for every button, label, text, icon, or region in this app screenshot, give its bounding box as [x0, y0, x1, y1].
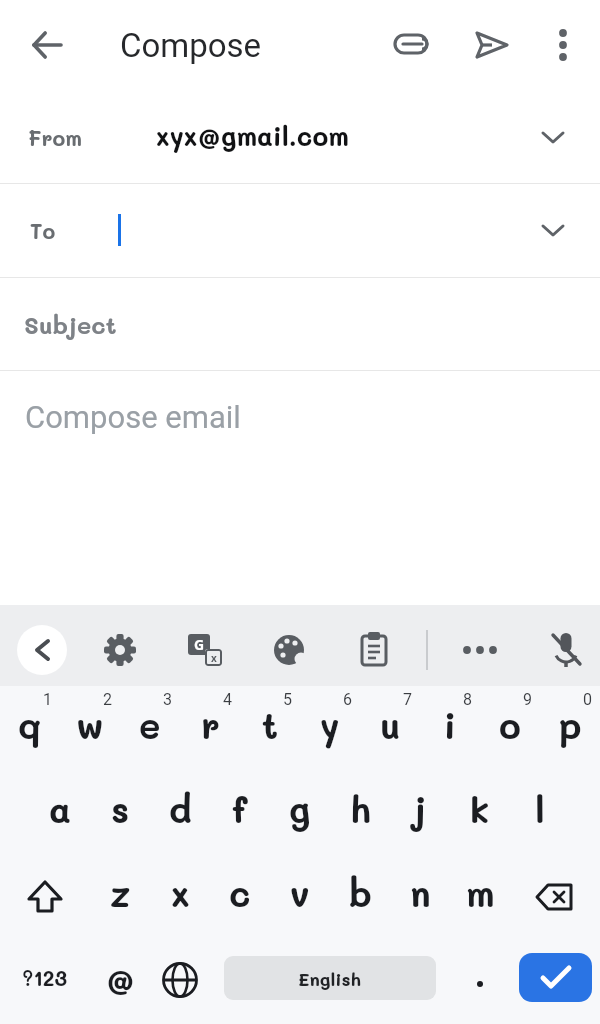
button[interactable]: y [300, 686, 360, 770]
button[interactable] [150, 939, 210, 1024]
button[interactable]: g [270, 770, 330, 854]
button[interactable]: Subject [0, 278, 600, 370]
button[interactable]: G [188, 634, 222, 666]
staticText: 9 [523, 690, 532, 709]
button[interactable]: t [240, 686, 300, 770]
staticText: b [349, 869, 372, 916]
button[interactable] [393, 28, 433, 60]
staticText: l [535, 785, 545, 832]
staticText: r [201, 701, 220, 748]
button[interactable] [548, 27, 578, 63]
staticText: x [211, 651, 217, 665]
button[interactable]: m [450, 854, 510, 939]
staticText: From [28, 124, 82, 151]
button[interactable] [549, 631, 583, 669]
staticText: 4 [223, 690, 232, 709]
staticText: v [290, 869, 310, 916]
button[interactable]: @ [90, 939, 150, 1024]
button[interactable]: r [180, 686, 240, 770]
staticText: q [18, 701, 42, 748]
staticText: n [410, 869, 431, 916]
staticText: Compose email [25, 399, 241, 435]
button[interactable]: Compose email [0, 371, 600, 605]
staticText: Subject [24, 309, 117, 340]
button[interactable]: i [420, 686, 480, 770]
staticText: t [262, 701, 278, 748]
staticText: y [320, 701, 340, 748]
staticText: j [413, 785, 427, 832]
staticText: s [111, 785, 130, 832]
staticText: u [380, 701, 401, 748]
staticText: To [30, 217, 56, 244]
staticText: ?123 [22, 964, 68, 991]
staticText: 1 [43, 690, 52, 709]
button[interactable]: j [390, 770, 450, 854]
staticText: x [171, 869, 190, 916]
button[interactable]: d [150, 770, 210, 854]
staticText: d [169, 785, 192, 832]
button[interactable] [359, 632, 389, 668]
staticText: 0 [583, 690, 592, 709]
staticText: English [298, 967, 362, 990]
staticText: xyx@gmail.com [156, 119, 349, 153]
button[interactable]: c [210, 854, 270, 939]
staticText: 6 [343, 690, 352, 709]
button[interactable]: p [540, 686, 600, 770]
button[interactable] [472, 25, 512, 65]
staticText: p [559, 701, 582, 748]
staticText: Compose [120, 26, 262, 65]
button[interactable] [17, 625, 67, 675]
button[interactable] [450, 939, 510, 1024]
staticText: 3 [163, 690, 172, 709]
button[interactable]: From [0, 90, 600, 183]
button[interactable] [460, 638, 500, 662]
staticText: k [470, 785, 490, 832]
button[interactable]: s [90, 770, 150, 854]
button[interactable]: f [210, 770, 270, 854]
staticText: i [444, 701, 457, 748]
staticText: G [194, 635, 205, 654]
staticText: @ [106, 957, 135, 999]
button[interactable] [510, 939, 600, 1024]
staticText: 7 [403, 690, 412, 709]
staticText: c [229, 869, 251, 916]
staticText: f [232, 785, 248, 832]
button[interactable]: l [510, 770, 570, 854]
staticText: 8 [463, 690, 472, 709]
staticText: a [49, 785, 72, 832]
button[interactable]: To [0, 184, 600, 277]
button[interactable]: u [360, 686, 420, 770]
button[interactable]: b [330, 854, 390, 939]
button[interactable] [29, 27, 65, 63]
button[interactable]: k [450, 770, 510, 854]
button[interactable]: n [390, 854, 450, 939]
button[interactable]: q [0, 686, 60, 770]
button[interactable] [0, 854, 90, 939]
button[interactable] [272, 634, 306, 666]
staticText: w [76, 701, 104, 748]
button[interactable]: e [120, 686, 180, 770]
staticText: 2 [103, 690, 112, 709]
staticText: m [466, 869, 495, 916]
button[interactable] [510, 854, 600, 939]
staticText: e [139, 701, 161, 748]
staticText: h [350, 785, 371, 832]
button[interactable] [103, 633, 137, 667]
button[interactable]: z [90, 854, 150, 939]
staticText: z [110, 869, 131, 916]
button[interactable]: ?123 [0, 939, 90, 1024]
button[interactable]: w [60, 686, 120, 770]
button[interactable]: English [224, 956, 436, 1000]
button[interactable]: a [30, 770, 90, 854]
button[interactable]: h [330, 770, 390, 854]
button[interactable]: v [270, 854, 330, 939]
button[interactable]: o [480, 686, 540, 770]
staticText: 5 [283, 690, 292, 709]
staticText: o [499, 701, 521, 748]
button[interactable]: x [150, 854, 210, 939]
staticText: g [289, 785, 311, 832]
